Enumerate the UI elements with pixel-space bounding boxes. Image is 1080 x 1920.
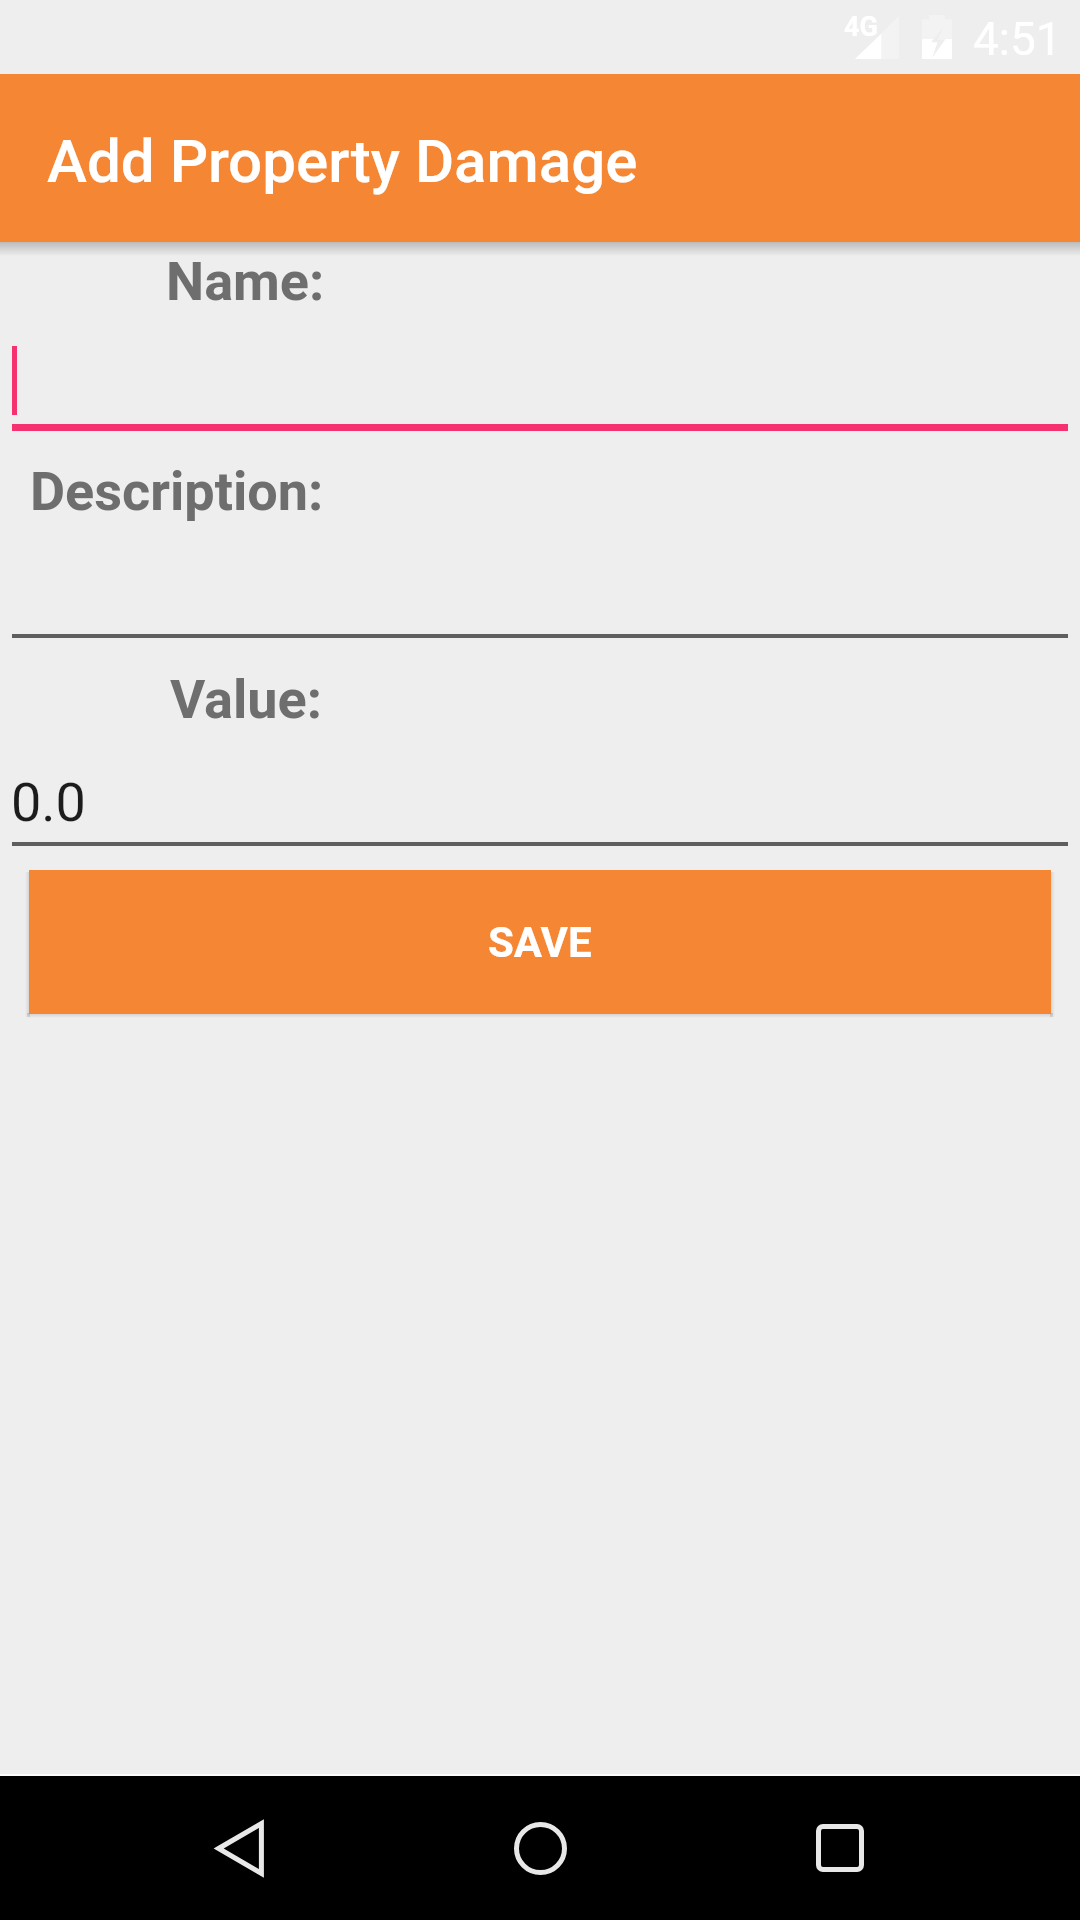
button[interactable]: Back: [168, 1776, 312, 1920]
button[interactable]: Add Property Damage: [0, 74, 1080, 242]
staticText: Value:: [170, 668, 323, 731]
button[interactable]: [12, 320, 1068, 431]
button[interactable]: SAVE: [29, 870, 1051, 1014]
staticText: 4:51: [973, 12, 1062, 66]
staticText: Name:: [166, 250, 325, 313]
button[interactable]: [11, 752, 1068, 846]
staticText: SAVE: [488, 918, 592, 967]
other: Mobile signal: [855, 16, 899, 59]
button[interactable]: Recent apps: [768, 1776, 912, 1920]
staticText: Description:: [30, 460, 324, 523]
other: Battery charging: [922, 15, 952, 59]
staticText: 4G: [844, 11, 878, 43]
button[interactable]: Home: [468, 1776, 612, 1920]
staticText: 0.0: [11, 771, 86, 834]
button[interactable]: [12, 530, 1068, 638]
staticText: Add Property Damage: [47, 126, 638, 196]
